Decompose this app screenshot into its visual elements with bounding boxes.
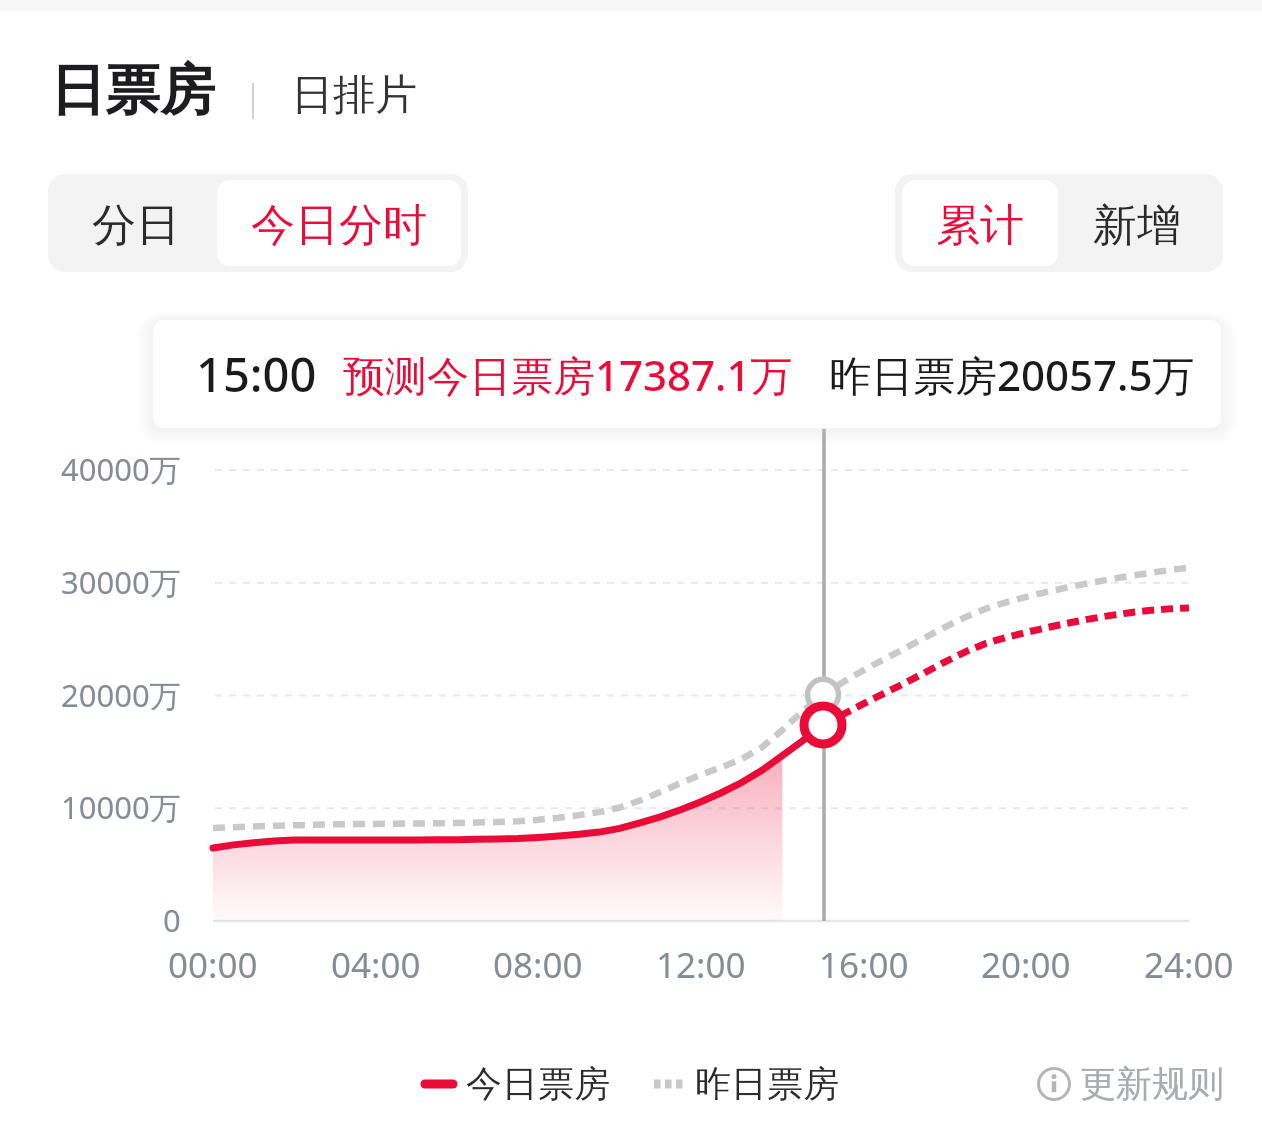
button[interactable]: 日排片 xyxy=(291,69,417,122)
button[interactable]: 今日分时 xyxy=(217,180,461,266)
staticText: 今日票房 xyxy=(466,1061,610,1106)
staticText: 00:00 xyxy=(168,941,258,989)
staticText: 累计 xyxy=(936,198,1024,253)
staticText: 40000万 xyxy=(61,448,181,490)
staticText: 16:00 xyxy=(819,941,909,989)
staticText: 分日 xyxy=(92,198,180,253)
staticText: 昨日票房20057.5万 xyxy=(829,346,1195,403)
button[interactable]: 日票房 xyxy=(50,56,215,125)
staticText: 10000万 xyxy=(61,786,181,828)
staticText: 20000万 xyxy=(61,674,181,716)
staticText: 30000万 xyxy=(61,561,181,603)
staticText: 12:00 xyxy=(656,941,746,989)
staticText: 24:00 xyxy=(1144,941,1234,989)
button[interactable]: 新增 xyxy=(1058,180,1216,266)
staticText: 04:00 xyxy=(331,941,421,989)
staticText: 新增 xyxy=(1093,198,1181,253)
button[interactable]: 分日 xyxy=(55,180,217,266)
button[interactable]: 今日票房 xyxy=(422,1061,610,1106)
other: Update rules info xyxy=(1037,1067,1071,1101)
button[interactable]: 累计 xyxy=(902,180,1058,266)
button[interactable]: 15:00 xyxy=(153,320,1221,428)
staticText: 日排片 xyxy=(291,69,417,122)
staticText: 日票房 xyxy=(50,56,215,125)
staticText: 08:00 xyxy=(493,941,583,989)
staticText: 20:00 xyxy=(981,941,1071,989)
button[interactable]: Update rules info xyxy=(1037,1061,1224,1106)
button[interactable]: 昨日票房 xyxy=(654,1061,839,1106)
staticText: 预测今日票房17387.1万 xyxy=(343,346,793,403)
staticText: 今日分时 xyxy=(251,198,427,253)
staticText: 0 xyxy=(163,899,181,941)
staticText: 15:00 xyxy=(196,342,317,406)
staticText: 昨日票房 xyxy=(695,1061,839,1106)
staticText: 更新规则 xyxy=(1080,1061,1224,1106)
